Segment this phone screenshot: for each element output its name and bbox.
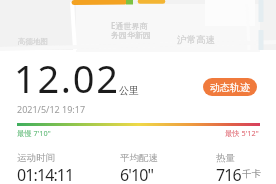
staticText: 公里 xyxy=(119,84,139,97)
staticText: 动态轨迹 xyxy=(210,81,250,94)
button[interactable]: 平均配速 xyxy=(120,152,158,184)
staticText: 平均配速 xyxy=(120,152,158,164)
staticText: 最慢 7'10" xyxy=(17,128,51,138)
staticText: 高德地图 xyxy=(18,37,48,46)
staticText: E通世界商 务园华新园 xyxy=(111,20,151,40)
staticText: 千卡 xyxy=(242,168,261,180)
staticText: 运动时间 xyxy=(17,152,55,164)
staticText: 沪常高速 xyxy=(177,34,215,46)
staticText: 12.02 xyxy=(14,52,120,104)
button[interactable]: 动态轨迹 xyxy=(203,78,257,96)
button[interactable]: 热量 xyxy=(216,152,261,184)
staticText: 2021/5/12 19:17 xyxy=(17,103,86,115)
button[interactable]: 运动时间 xyxy=(17,152,74,184)
staticText: 716 xyxy=(216,164,241,184)
staticText: 最快 5'12" xyxy=(225,128,259,138)
staticText: 热量 xyxy=(216,152,235,164)
staticText: 6'10" xyxy=(120,164,154,184)
staticText: 01:14:11 xyxy=(17,164,74,184)
